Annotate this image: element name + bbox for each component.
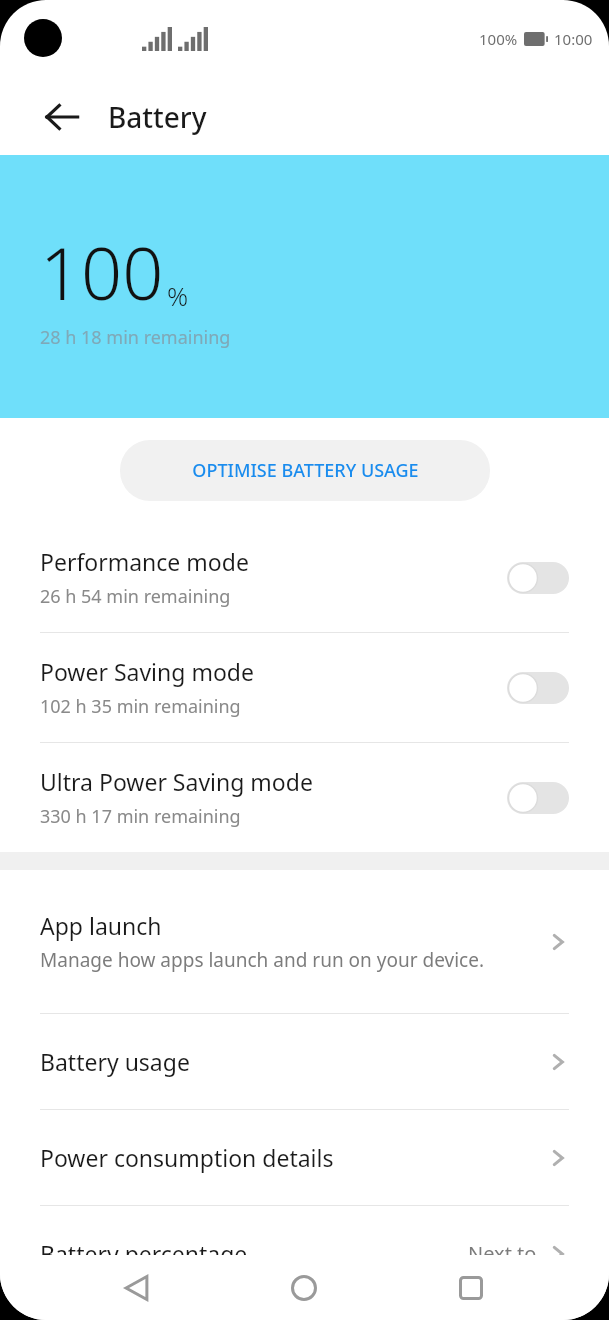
button[interactable]: OPTIMISE BATTERY USAGE bbox=[120, 440, 490, 501]
button[interactable]: Back bbox=[30, 85, 94, 149]
staticText: Battery bbox=[108, 98, 207, 136]
button[interactable]: Power consumption details bbox=[0, 1110, 609, 1205]
staticText: OPTIMISE BATTERY USAGE bbox=[192, 458, 419, 483]
staticText: 28 h 18 min remaining bbox=[40, 325, 231, 350]
button[interactable]: Home bbox=[275, 1259, 333, 1317]
button[interactable]: Toggle bbox=[507, 672, 569, 704]
button[interactable]: Battery usage bbox=[0, 1014, 609, 1109]
staticText: Ultra Power Saving mode bbox=[40, 766, 313, 797]
button[interactable]: Performance mode bbox=[0, 523, 609, 632]
staticText: 102 h 35 min remaining bbox=[40, 694, 241, 719]
staticText: Performance mode bbox=[40, 546, 249, 577]
staticText: Battery percentage bbox=[40, 1238, 248, 1269]
staticText: Manage how apps launch and run on your d… bbox=[40, 947, 506, 973]
staticText: 100% bbox=[479, 29, 518, 49]
staticText: App launch bbox=[40, 910, 162, 941]
staticText: % bbox=[167, 278, 189, 313]
button[interactable]: Toggle bbox=[507, 782, 569, 814]
button[interactable]: Recent apps bbox=[442, 1259, 500, 1317]
button[interactable]: App launch bbox=[0, 870, 609, 1013]
staticText: Next to bbox=[468, 1240, 537, 1267]
button[interactable]: Ultra Power Saving mode bbox=[0, 743, 609, 852]
staticText: 10:00 bbox=[554, 29, 593, 49]
staticText: Battery usage bbox=[40, 1046, 190, 1077]
button[interactable]: Back bbox=[108, 1259, 166, 1317]
staticText: Power consumption details bbox=[40, 1142, 334, 1173]
staticText: 100 bbox=[40, 223, 164, 321]
staticText: 26 h 54 min remaining bbox=[40, 584, 231, 609]
staticText: 330 h 17 min remaining bbox=[40, 804, 241, 829]
button[interactable]: Battery percentage bbox=[0, 1206, 609, 1301]
button[interactable]: Power Saving mode bbox=[0, 633, 609, 742]
button[interactable]: Toggle bbox=[507, 562, 569, 594]
staticText: Power Saving mode bbox=[40, 656, 254, 687]
